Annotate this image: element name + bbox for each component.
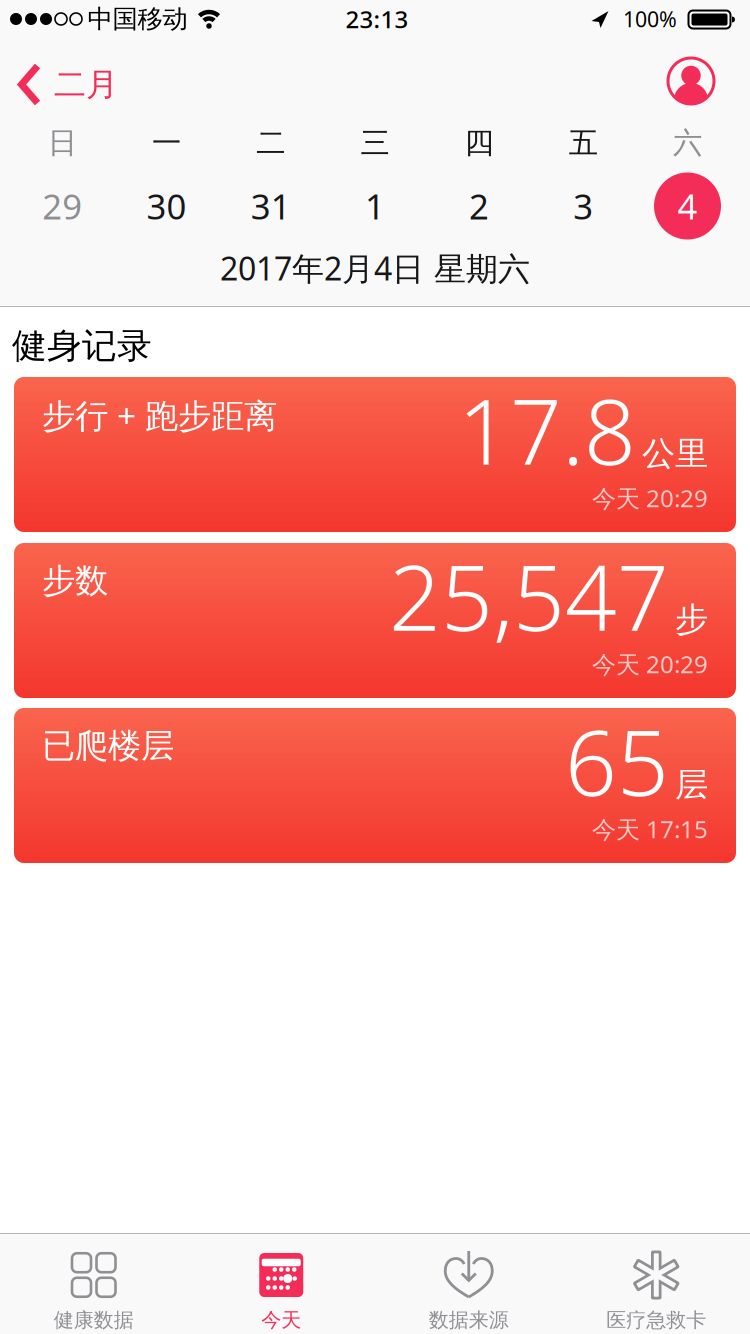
- button[interactable]: 数据来源: [375, 1234, 562, 1334]
- staticText: 层: [675, 764, 708, 805]
- button[interactable]: 已爬楼层: [14, 708, 736, 863]
- button[interactable]: 健康数据: [0, 1234, 187, 1334]
- button[interactable]: 今天: [188, 1234, 375, 1334]
- staticText: 健康数据: [54, 1308, 134, 1332]
- staticText: 六: [673, 125, 702, 161]
- staticText: 23:13: [345, 3, 408, 35]
- staticText: 65: [565, 700, 669, 821]
- staticText: 2017年2月4日 星期六: [220, 247, 530, 289]
- button[interactable]: 返回 二月: [18, 62, 118, 106]
- button[interactable]: 步行 + 跑步距离: [14, 377, 736, 532]
- button[interactable]: 医疗急救卡: [563, 1234, 750, 1334]
- staticText: 已爬楼层: [42, 725, 174, 766]
- staticText: 数据来源: [429, 1308, 509, 1332]
- staticText: 30: [146, 183, 186, 229]
- button[interactable]: 2017年2月30日: [146, 183, 186, 229]
- staticText: 今天 20:29: [592, 648, 708, 680]
- button[interactable]: 2017年2月2日: [469, 183, 489, 229]
- staticText: 17.8: [458, 369, 636, 490]
- button[interactable]: 2017年2月1日: [365, 183, 385, 229]
- staticText: 100%: [623, 5, 677, 33]
- staticText: 医疗急救卡: [606, 1308, 706, 1332]
- staticText: 二月: [54, 65, 118, 104]
- staticText: 1: [365, 183, 385, 229]
- staticText: 四: [465, 125, 494, 161]
- staticText: 步行 + 跑步距离: [42, 393, 277, 437]
- staticText: 今天: [261, 1308, 301, 1332]
- button[interactable]: 2017年2月29日: [42, 183, 82, 229]
- button[interactable]: 个人资料: [668, 58, 714, 104]
- staticText: 步: [675, 599, 708, 640]
- staticText: 步数: [42, 560, 108, 601]
- staticText: 中国移动: [87, 3, 187, 34]
- button[interactable]: 步数: [14, 543, 736, 698]
- staticText: 25,547: [389, 535, 669, 656]
- button[interactable]: 2017年2月3日: [573, 183, 593, 229]
- button[interactable]: 2017年2月4日: [677, 183, 697, 229]
- staticText: 一: [152, 125, 181, 161]
- staticText: 今天 17:15: [592, 813, 708, 845]
- button[interactable]: 2017年2月31日: [251, 183, 291, 229]
- staticText: 2: [469, 183, 489, 229]
- staticText: 三: [360, 125, 389, 161]
- staticText: 日: [48, 125, 77, 161]
- staticText: 29: [42, 183, 82, 229]
- staticText: 4: [677, 183, 697, 229]
- staticText: 今天 20:29: [592, 482, 708, 514]
- staticText: 健身记录: [12, 325, 152, 367]
- staticText: 二: [256, 125, 285, 161]
- staticText: 31: [251, 183, 291, 229]
- staticText: 3: [573, 183, 593, 229]
- staticText: 五: [569, 125, 598, 161]
- staticText: 公里: [642, 433, 708, 474]
